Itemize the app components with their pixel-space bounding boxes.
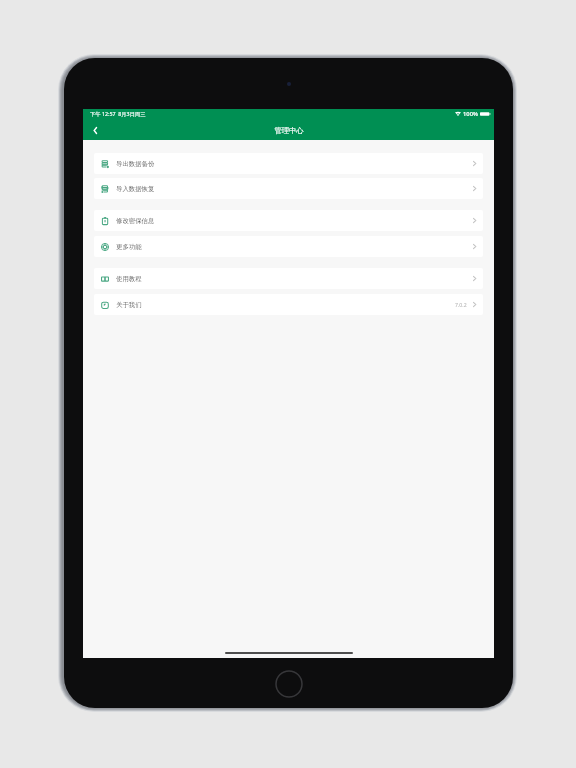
staticText: 使用教程 <box>116 275 142 283</box>
staticText: 管理中心 <box>274 126 304 135</box>
staticText: 下午 12:57 8月3日周三 <box>90 110 146 117</box>
staticText: 修改密保信息 <box>116 217 155 225</box>
staticText: 更多功能 <box>116 243 142 251</box>
staticText: 导出数据备份 <box>116 160 155 168</box>
button[interactable]: 修改密保信息 <box>94 210 483 231</box>
staticText: 7.0.2 <box>455 301 467 308</box>
button[interactable]: 导入数据恢复 <box>94 178 483 199</box>
button[interactable]: 导出数据备份 <box>94 153 483 174</box>
button[interactable]: 关于我们 <box>94 294 483 315</box>
button[interactable]: 返回 <box>83 121 109 140</box>
staticText: 关于我们 <box>116 301 142 309</box>
button[interactable]: 使用教程 <box>94 268 483 289</box>
button[interactable]: 更多功能 <box>94 236 483 257</box>
staticText: 100% <box>463 110 478 118</box>
staticText: 导入数据恢复 <box>116 185 155 193</box>
